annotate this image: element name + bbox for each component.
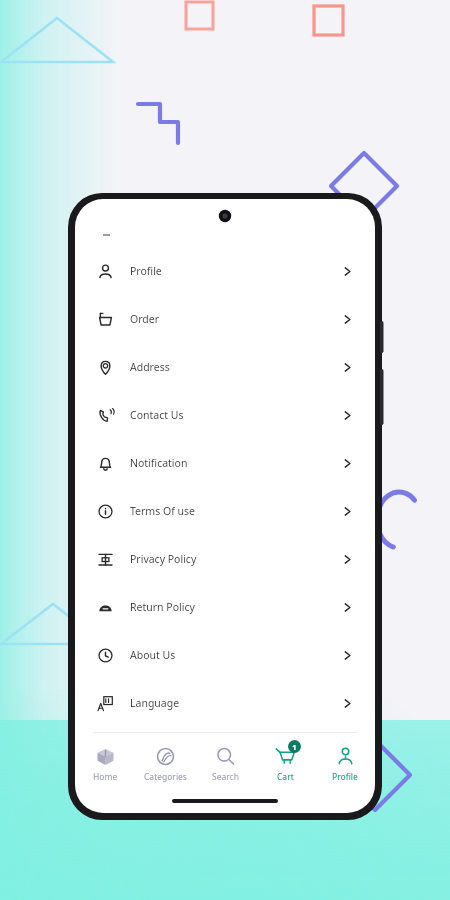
- staticText: Terms Of use: [130, 504, 195, 518]
- staticText: 1: [292, 742, 297, 752]
- button[interactable]: Categories: [135, 733, 195, 789]
- button[interactable]: Search: [195, 733, 255, 789]
- staticText: Language: [130, 696, 180, 710]
- button[interactable]: Address: [75, 343, 375, 391]
- button[interactable]: Home: [75, 733, 135, 789]
- button[interactable]: Notification: [75, 439, 375, 487]
- staticText: Categories: [144, 771, 187, 783]
- button[interactable]: Profile: [75, 247, 375, 295]
- staticText: Profile: [130, 264, 162, 278]
- button[interactable]: Language: [75, 679, 375, 727]
- staticText: Search: [212, 771, 239, 783]
- button[interactable]: Order: [75, 295, 375, 343]
- staticText: Order: [130, 312, 160, 326]
- staticText: Notification: [130, 456, 188, 470]
- button[interactable]: Privacy Policy: [75, 535, 375, 583]
- staticText: Address: [130, 360, 170, 374]
- staticText: About Us: [130, 648, 176, 662]
- staticText: Profile: [332, 771, 358, 783]
- button[interactable]: Return Policy: [75, 583, 375, 631]
- staticText: Home: [93, 771, 118, 783]
- staticText: Privacy Policy: [130, 552, 197, 566]
- staticText: Contact Us: [130, 408, 184, 422]
- button[interactable]: Terms Of use: [75, 487, 375, 535]
- button[interactable]: Profile: [315, 733, 375, 789]
- button[interactable]: About Us: [75, 631, 375, 679]
- button[interactable]: Contact Us: [75, 391, 375, 439]
- staticText: Return Policy: [130, 600, 195, 614]
- staticText: Cart: [277, 771, 294, 783]
- button[interactable]: 1: [255, 733, 315, 789]
